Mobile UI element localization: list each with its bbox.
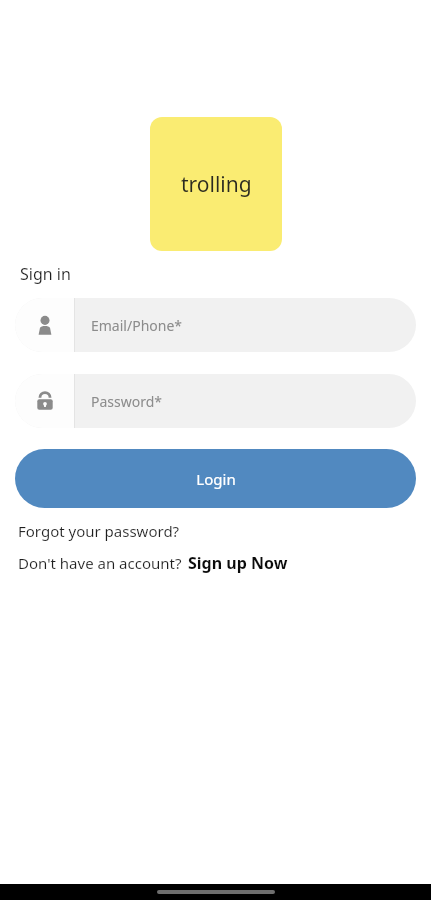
staticText: Sign in — [20, 263, 71, 285]
staticText: Login — [196, 469, 236, 489]
button[interactable]: Password — [15, 374, 416, 428]
staticText: Forgot your password? — [18, 521, 180, 541]
button[interactable]: Login — [15, 449, 416, 508]
button[interactable]: Email or phone — [15, 298, 416, 352]
other: Email or phone — [15, 298, 74, 352]
staticText: Password* — [91, 392, 163, 411]
button[interactable]: trolling — [150, 117, 282, 251]
staticText: Email/Phone* — [91, 316, 183, 335]
staticText: trolling — [181, 170, 252, 199]
staticText: Sign up Now — [188, 552, 288, 574]
staticText: Don't have an account? — [18, 553, 182, 573]
other: Password — [15, 374, 74, 428]
button[interactable]: Sign up Now — [188, 550, 288, 576]
button[interactable]: Forgot your password? — [18, 519, 180, 543]
